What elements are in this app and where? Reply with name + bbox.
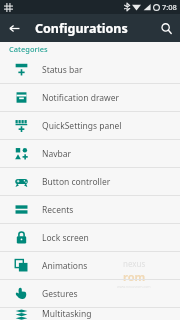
- staticText: Lock screen: [42, 232, 89, 244]
- button[interactable]: Multitasking: [0, 308, 180, 320]
- staticText: QuickSettings panel: [42, 120, 122, 132]
- button[interactable]: Back: [0, 14, 28, 42]
- staticText: Button controller: [42, 176, 111, 188]
- button[interactable]: Recents: [0, 196, 180, 223]
- button[interactable]: Animations: [0, 252, 180, 279]
- staticText: Gestures: [42, 288, 78, 300]
- button[interactable]: Navbar: [0, 140, 180, 167]
- button[interactable]: Button controller: [0, 168, 180, 195]
- staticText: Multitasking: [42, 308, 92, 320]
- staticText: Animations: [42, 260, 88, 272]
- button[interactable]: Lock screen: [0, 224, 180, 251]
- staticText: 7:08: [162, 2, 177, 12]
- button[interactable]: Search: [152, 14, 180, 42]
- staticText: Notification drawer: [42, 92, 120, 104]
- staticText: Navbar: [42, 148, 72, 160]
- staticText: rom: [123, 269, 146, 284]
- button[interactable]: QuickSettings panel: [0, 112, 180, 139]
- button[interactable]: Notification drawer: [0, 84, 180, 111]
- staticText: Recents: [42, 204, 74, 216]
- button[interactable]: Gestures: [0, 280, 180, 307]
- staticText: nexus: [123, 258, 146, 269]
- staticText: www.nexusrom.com: [117, 284, 151, 289]
- staticText: Status bar: [42, 64, 83, 76]
- button[interactable]: Status bar: [0, 56, 180, 83]
- staticText: Configurations: [35, 20, 128, 37]
- staticText: Categories: [9, 44, 48, 54]
